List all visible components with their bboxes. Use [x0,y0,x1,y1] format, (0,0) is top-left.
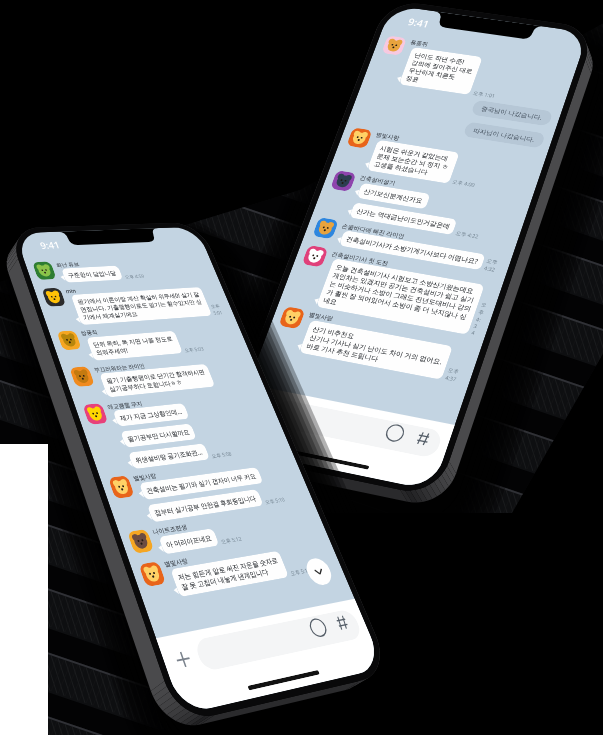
button[interactable]: 제가 지금 그상황인데... [118,407,184,422]
button[interactable]: 필기 기출행행이로 단기간 합격하시면 [105,368,210,393]
button[interactable] [269,398,444,459]
staticText: 실기공부하다 토합니다ㅎㅎ [108,378,184,393]
staticText: 중국님이 나갔습니다. [480,104,544,122]
staticText: 는 비슷하거나 소방이 그래도 전년도대비나 강의 [328,279,473,313]
staticText: 나이트조련생 [151,523,189,536]
button[interactable]: Scroll to latest [302,556,335,587]
staticText: 점부터 실기공부 안한걸 후회중입니다 [153,494,258,518]
staticText: 오후 5:08 [210,450,232,459]
staticText: 건축설비기사가 소방기계기사보다 어렵나요? [345,234,479,266]
staticText: 오후 4:00 [451,178,476,188]
staticText: 건축설비기사 첫 도전 [331,249,390,267]
staticText: 산가는 역대급난이도인거같은데 [355,207,451,231]
staticText: 저는 힘든게 알로 써진 자운을 숫자로 [176,555,279,582]
staticText: 필기공부만 다시할까요 [126,428,191,443]
staticText: 별빛사랑 [163,556,189,569]
staticText: 강의에 짚어주신 대로 [410,59,474,75]
staticText: 오늘 건축설비기사 시험보고 소방산기왔는데요 [334,263,475,296]
staticText: 오후 4:34 [470,301,488,336]
button[interactable]: Add attachment [244,396,273,421]
button[interactable]: 필기공부만 다시할까요 [126,428,191,443]
staticText: 애교뿜뿜 무지 [106,399,143,410]
button[interactable] [193,608,364,672]
staticText: 고생들 하셨습니다 [373,160,430,176]
button[interactable]: 산기보신분계신가요 [363,187,425,205]
button[interactable]: Hashtag [408,426,438,452]
staticText: 따자님이 나갔습니다. [472,126,536,144]
staticText: 별빛사랑 [132,472,158,483]
button[interactable]: 필기에서 이론이랑 계산 확실히 위두세0! 실기 잘 [76,290,207,321]
staticText: 제가 지금 그상황인데... [118,407,184,422]
staticText: 별빛사랑 [375,131,401,142]
staticText: 산기나 기사나 실기 난이도 차이 거의 없어요. [308,333,444,366]
staticText: 필기에서 이론이랑 계산 확실히 위두세0! 실기 잘 [76,290,201,306]
staticText: 네요 [322,296,339,306]
button[interactable]: 산가는 역대급난이도인거같은데 [355,207,451,231]
button[interactable]: Emoji [304,614,332,641]
staticText: 부끄러워하는 라이언 [93,361,146,373]
staticText: 9:41 [406,15,431,30]
button[interactable]: 단위 톡히, 톡 지면 나올 정도로 [92,334,178,357]
staticText: 산기보신분계신가요 [363,187,425,205]
staticText: 외워주세여! [95,346,129,357]
staticText: 오후 5:01 [209,302,227,316]
button[interactable]: 오늘 건축설비기사 시험보고 소방산기왔는데요 [322,263,478,330]
button[interactable]: 건축설비기사가 소방기계기사보다 어렵나요? [345,234,479,266]
staticText: 오후 4:37 [444,366,465,383]
staticText: 단위 톡히, 톡 지면 나올 정도로 [92,334,174,349]
staticText: 무난하게 치른듯 [407,66,457,81]
staticText: 오후 4:59 [124,273,145,279]
button[interactable]: 위생설비랑 공기조화관... [134,448,204,465]
staticText: 건축설비설기 [359,174,397,187]
staticText: 용돌쥐 [409,39,429,48]
staticText: 오후 4:22 [455,229,480,239]
button[interactable]: 중국님이 나갔습니다. [480,104,544,122]
staticText: 오후 5:10 [264,495,286,505]
staticText: 위생설비랑 공기조화관... [134,448,204,465]
staticText: 오후 5:12 [219,535,243,545]
staticText: 오후 4:32 [483,257,503,273]
staticText: 9:41 [38,238,61,252]
button[interactable]: 난이도 작년 수준! [405,51,477,91]
button[interactable]: 건축설비는 필기와 실기 갭자이 너무 커요 [145,471,258,495]
staticText: 필기 기출행행이로 단기간 합격하시면 [105,368,207,385]
staticText: 바로 기사 추천 드립니다 [305,341,380,363]
button[interactable]: 따자님이 나갔습니다. [472,126,536,144]
staticText: 건축설비는 필기와 실기 갭자이 너무 커요 [145,471,258,495]
button[interactable]: Hashtag [328,609,356,636]
staticText: 잘 못 고칩더 내놓게 낸계입니다 [180,567,270,592]
staticText: 손울바다에 빠진 라이언 [341,221,407,239]
button[interactable]: 아 머리아프네요 [164,533,213,549]
button[interactable]: 산기 비추천요 [305,324,447,375]
staticText: 개인차는 있겠지만 공기는 건축설비가 쉽고 실기 [331,271,476,305]
staticText: 오후 5:03 [183,345,204,353]
button[interactable]: 구준항이 답입니당 [66,269,118,279]
staticText: 면집니다. 기출행행이로도 필기는 할수있지만 실 [79,298,203,313]
staticText: 아 머리아프네요 [164,533,213,549]
staticText: 문제 보는순간 뇌 정지 ㅎ [376,152,451,171]
button[interactable]: Add attachment [168,645,198,674]
button[interactable]: 저는 힘든게 알로 써진 자운을 숫자로 [176,555,283,592]
button[interactable]: 시험은 쉬운거 같았는데 [373,144,454,179]
staticText: 구준항이 답입니당 [66,269,118,279]
button[interactable]: 점부터 실기공부 안한걸 후회중입니다 [153,494,258,518]
staticText: 별빛사랑 [308,311,334,323]
staticText: 난이도 작년 수준! [413,51,466,66]
staticText: 오후 5:14 [289,566,311,576]
staticText: 산기 비추천요 [311,324,356,341]
button[interactable]: Emoji [380,420,410,446]
staticText: 정윤 [405,74,421,84]
staticText: 화난 튜브 [55,260,80,268]
staticText: 시험은 쉬운거 같았는데 [379,144,450,163]
staticText: 기에서 체계실기에요 [82,310,139,321]
staticText: 오후 1:01 [472,89,496,99]
staticText: 쌍풍칙 [80,329,99,337]
staticText: min [64,287,77,294]
staticText: 가 훨씬 잘 되어있어서 소방이 좀 더 낫지않나 싶 [325,287,469,321]
